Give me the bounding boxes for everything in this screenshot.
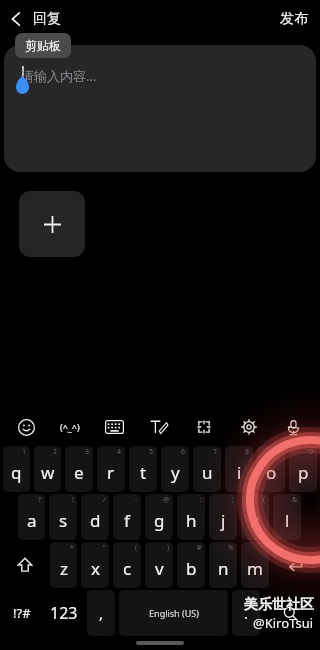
staticText: b <box>186 557 197 580</box>
staticText: y <box>171 461 180 484</box>
button[interactable]: Resize <box>181 408 226 446</box>
button[interactable]: Voice input <box>271 408 316 446</box>
button[interactable]: ( <box>113 542 141 588</box>
staticText: 5 <box>149 447 154 457</box>
staticText: m <box>247 557 263 580</box>
button[interactable]: 123 <box>45 590 83 636</box>
button[interactable]: " <box>81 542 109 588</box>
staticText: a <box>27 509 37 532</box>
staticText: j <box>221 509 226 532</box>
button[interactable]: Shift <box>3 542 46 588</box>
button[interactable]: Back <box>0 4 69 34</box>
button[interactable]: ? <box>18 494 45 540</box>
staticText: ) <box>167 543 170 553</box>
button[interactable]: & <box>273 494 301 540</box>
button[interactable]: 发布 <box>268 4 320 34</box>
button[interactable]: , <box>87 590 115 636</box>
staticText: 8 <box>245 447 250 457</box>
button[interactable]: # <box>177 542 205 588</box>
button[interactable]: 0 <box>289 446 317 492</box>
staticText: !?# <box>13 604 31 622</box>
staticText: ( <box>135 543 138 553</box>
staticText: ( <box>263 495 266 505</box>
button[interactable]: 3 <box>65 446 93 492</box>
button[interactable]: . <box>232 590 260 636</box>
staticText: @KiroTsui <box>253 614 314 632</box>
button[interactable]: ; <box>209 494 237 540</box>
button[interactable]: % <box>209 542 237 588</box>
staticText: n <box>218 557 229 580</box>
button[interactable]: Kaomoji <box>48 408 92 446</box>
staticText: 2 <box>53 447 58 457</box>
button[interactable]: Emoji <box>4 408 48 446</box>
button[interactable]: Enter <box>273 542 317 588</box>
staticText: " <box>103 543 106 553</box>
button[interactable]: - <box>241 542 269 588</box>
staticText: x <box>91 557 100 580</box>
button[interactable]: ) <box>145 542 173 588</box>
staticText: d <box>90 509 101 532</box>
staticText: p <box>298 461 309 484</box>
button[interactable]: * <box>50 542 77 588</box>
staticText: 6 <box>181 447 186 457</box>
button[interactable]: Handwriting <box>136 408 181 446</box>
staticText: 9 <box>277 447 282 457</box>
staticText: r <box>107 461 115 484</box>
staticText: o <box>266 461 277 484</box>
button[interactable]: Add image <box>19 191 85 257</box>
button[interactable]: 请输入内容... <box>4 45 316 172</box>
staticText: English (US) <box>149 607 199 619</box>
button[interactable]: ! <box>49 494 77 540</box>
staticText: * <box>70 543 74 553</box>
staticText: g <box>154 509 165 532</box>
staticText: % <box>228 543 234 553</box>
staticText: 123 <box>50 602 78 624</box>
staticText: u <box>202 461 213 484</box>
staticText: e <box>74 461 84 484</box>
staticText: & <box>292 495 298 505</box>
button[interactable]: 7 <box>193 446 221 492</box>
button[interactable]: : <box>177 494 205 540</box>
button[interactable]: / <box>81 494 109 540</box>
button[interactable]: 8 <box>225 446 253 492</box>
button[interactable]: @ <box>145 494 173 540</box>
staticText: , <box>99 603 104 623</box>
button[interactable]: 5 <box>129 446 157 492</box>
staticText: ! <box>72 495 74 505</box>
staticText: ; <box>232 495 234 505</box>
staticText: q <box>11 461 22 484</box>
button[interactable]: !?# <box>3 590 41 636</box>
staticText: 3 <box>85 447 90 457</box>
button[interactable]: Search <box>264 590 317 636</box>
staticText: @ <box>163 495 170 505</box>
staticText: 4 <box>117 447 122 457</box>
staticText: . <box>244 603 249 623</box>
staticText: / <box>103 495 106 505</box>
button[interactable]: ( <box>241 494 269 540</box>
staticText: l <box>285 509 290 532</box>
staticText: i <box>237 461 242 484</box>
button[interactable]: 2 <box>34 446 61 492</box>
button[interactable]: - <box>113 494 141 540</box>
staticText: 0 <box>309 447 314 457</box>
staticText: ? <box>38 495 42 505</box>
staticText: 回复 <box>33 10 61 28</box>
staticText: 请输入内容... <box>21 67 97 85</box>
button[interactable]: 9 <box>257 446 285 492</box>
staticText: c <box>123 557 132 580</box>
staticText: # <box>197 543 202 553</box>
button[interactable]: 剪贴板 <box>15 33 71 58</box>
button[interactable]: 1 <box>3 446 30 492</box>
button[interactable]: Settings <box>226 408 271 446</box>
button[interactable]: English (US) <box>119 590 228 636</box>
button[interactable]: 6 <box>161 446 189 492</box>
staticText: - <box>263 543 266 553</box>
button[interactable]: Keyboard layout <box>92 408 136 446</box>
staticText: v <box>155 557 164 580</box>
staticText: s <box>59 509 68 532</box>
staticText: : <box>200 495 202 505</box>
button[interactable]: 4 <box>97 446 125 492</box>
staticText: - <box>135 495 138 505</box>
staticText: t <box>140 461 147 484</box>
staticText: 7 <box>213 447 218 457</box>
